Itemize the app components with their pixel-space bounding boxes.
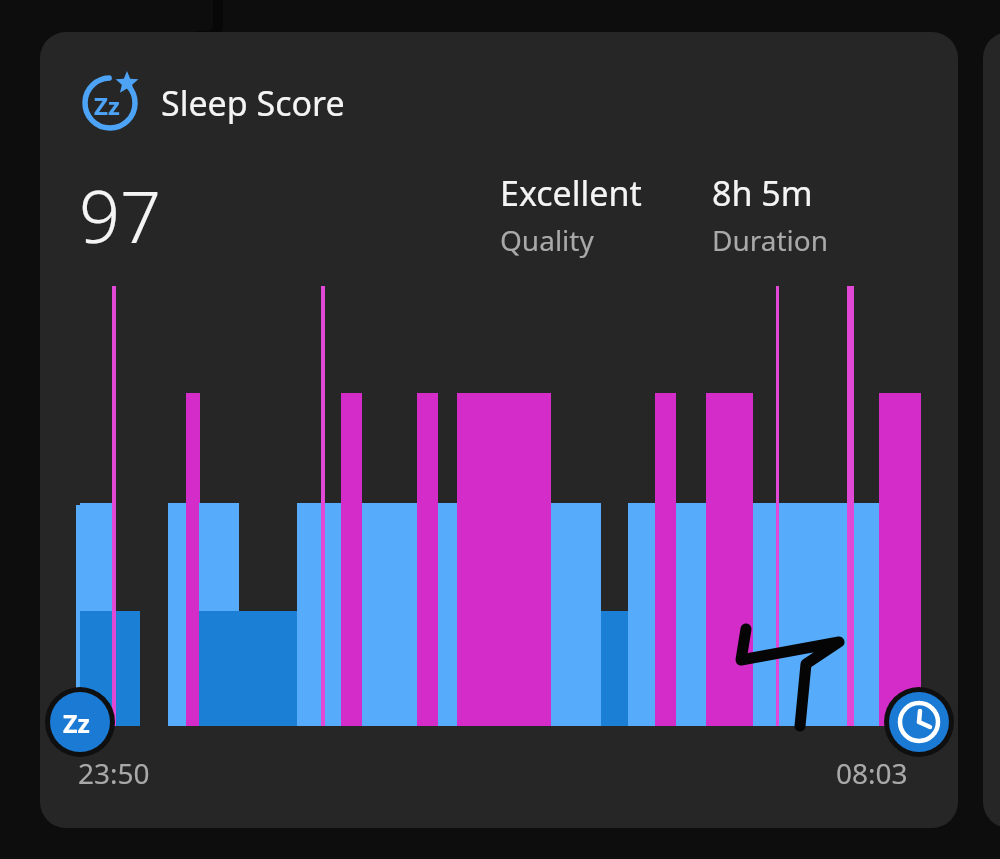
staticText: Zz <box>94 89 120 122</box>
staticText: Quality <box>500 221 594 259</box>
staticText: Duration <box>712 221 829 259</box>
button[interactable]: Sleep start time <box>45 687 115 757</box>
staticText: Sleep Score <box>161 80 345 126</box>
button[interactable]: Wake up time <box>884 687 954 757</box>
button[interactable]: 8h 5m <box>712 170 829 259</box>
staticText: 23:50 <box>78 754 150 792</box>
button[interactable]: Sleep Score <box>161 80 345 126</box>
staticText: Excellent <box>500 170 642 216</box>
staticText: 97 <box>79 166 162 264</box>
staticText: 08:03 <box>836 754 908 792</box>
staticText: Zz <box>63 706 90 740</box>
button[interactable]: Excellent <box>500 170 642 259</box>
staticText: 8h 5m <box>712 170 813 216</box>
